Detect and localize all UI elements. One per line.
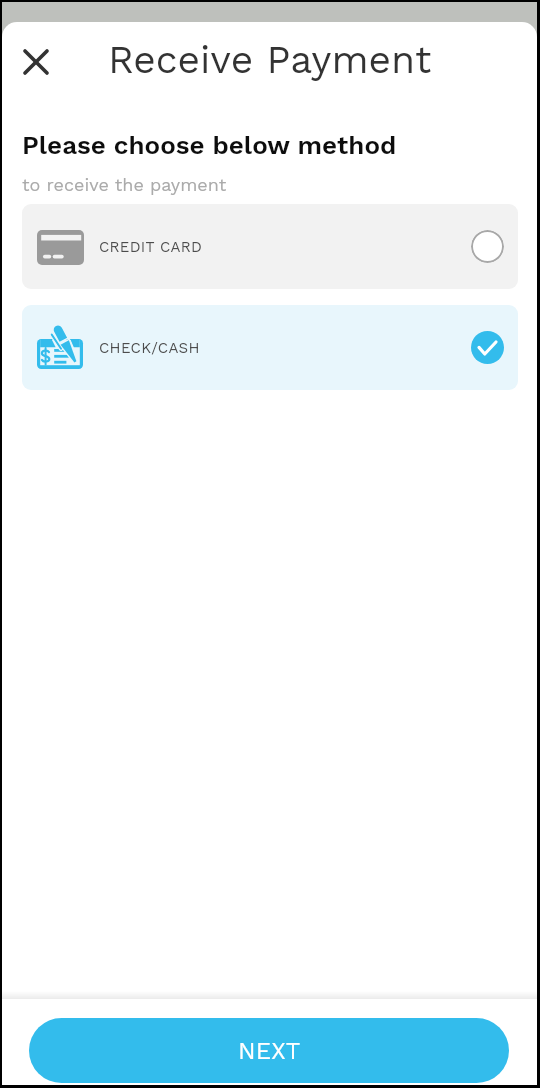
staticText: Receive Payment bbox=[108, 37, 432, 83]
staticText: NEXT bbox=[238, 1037, 301, 1065]
staticText: Please choose below method bbox=[22, 130, 397, 160]
staticText: CREDIT CARD bbox=[99, 238, 203, 256]
button[interactable]: NEXT bbox=[29, 1018, 509, 1083]
staticText: CHECK/CASH bbox=[99, 339, 200, 357]
button[interactable]: Close bbox=[13, 39, 59, 85]
button[interactable]: CHECK/CASH bbox=[22, 305, 518, 390]
button[interactable]: CREDIT CARD bbox=[22, 204, 518, 289]
staticText: to receive the payment bbox=[22, 174, 227, 195]
